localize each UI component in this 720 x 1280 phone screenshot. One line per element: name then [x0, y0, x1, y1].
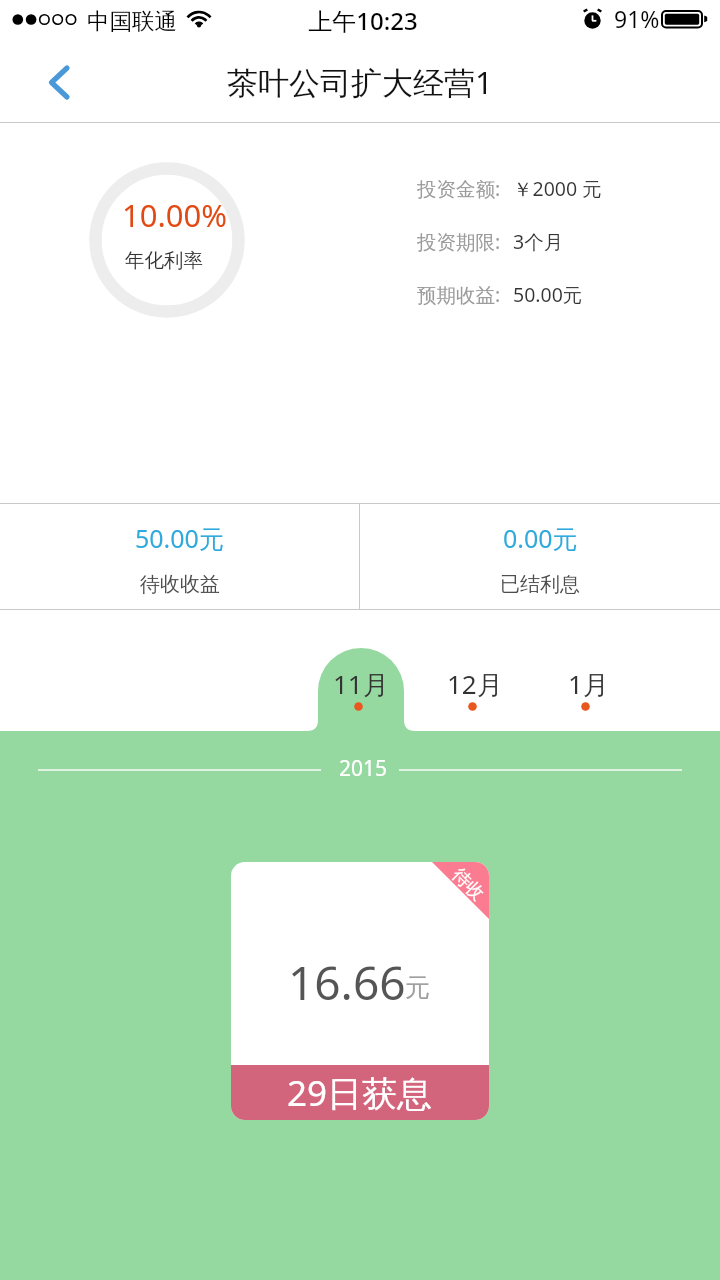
staticText: 投资金额: [417, 175, 501, 202]
staticText: 50.00元 [135, 521, 224, 555]
staticText: 91% [614, 3, 660, 34]
staticText: 投资期限: [417, 228, 501, 255]
staticText: 11月 [333, 666, 389, 702]
staticText: 已结利息 [500, 572, 580, 597]
button[interactable]: 12月 [427, 655, 523, 721]
staticText: 3个月 [513, 228, 564, 255]
staticText: 29日获息 [287, 1069, 433, 1117]
button[interactable]: 16.66 [231, 862, 489, 1120]
staticText: 元 [405, 972, 430, 1003]
staticText: 2015 [339, 754, 388, 783]
staticText: 1月 [568, 666, 609, 702]
staticText: 待收收益 [140, 572, 220, 597]
button[interactable]: 50.00元 [0, 506, 359, 611]
button[interactable]: 11月 [313, 655, 409, 721]
staticText: 年化利率 [125, 248, 203, 273]
staticText: 预期收益: [417, 281, 501, 308]
button[interactable]: 0.00元 [360, 506, 720, 611]
button[interactable]: Back [0, 42, 104, 123]
staticText: ￥2000 元 [513, 175, 602, 202]
staticText: 12月 [447, 666, 503, 702]
staticText: 茶叶公司扩大经营1 [227, 61, 493, 103]
staticText: 上午10:23 [3, 4, 720, 37]
staticText: 50.00元 [513, 281, 583, 308]
staticText: 10.00% [122, 194, 227, 236]
staticText: 待收 [447, 864, 489, 905]
staticText: 中国联通 [87, 7, 177, 35]
button[interactable]: 1月 [540, 655, 636, 721]
staticText: 16.66 [288, 951, 406, 1014]
staticText: 0.00元 [503, 521, 578, 555]
